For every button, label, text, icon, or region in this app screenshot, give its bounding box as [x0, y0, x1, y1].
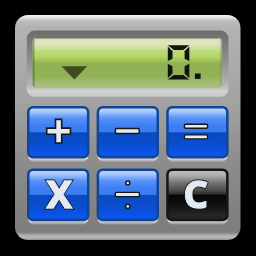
button[interactable]: Calculator [0, 0, 256, 256]
